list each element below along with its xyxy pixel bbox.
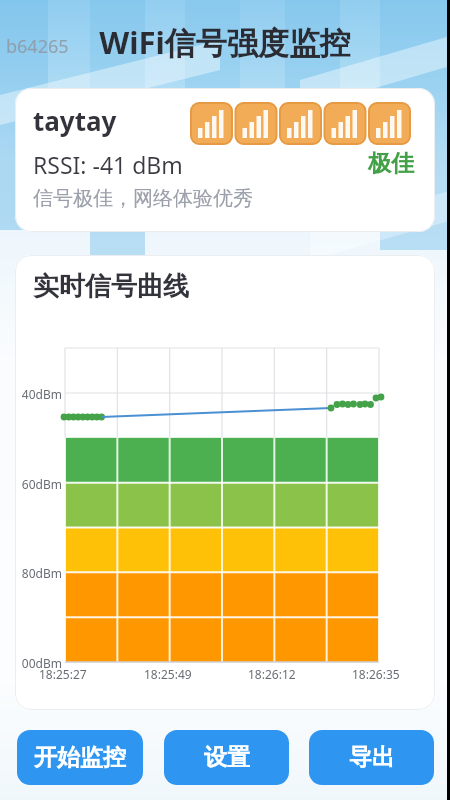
button[interactable]: taytay bbox=[15, 88, 435, 232]
staticText: 极佳 bbox=[15, 149, 414, 181]
staticText: 60dBm bbox=[15, 476, 62, 492]
staticText: 信号极佳，网络体验优秀 bbox=[33, 186, 253, 211]
staticText: b64265 bbox=[6, 34, 69, 59]
staticText: taytay bbox=[33, 103, 117, 138]
staticText: 80dBm bbox=[15, 565, 62, 581]
staticText: 00dBm bbox=[15, 655, 62, 671]
staticText: 18:25:49 bbox=[144, 666, 192, 682]
button[interactable]: 导出 bbox=[309, 730, 434, 785]
staticText: 实时信号曲线 bbox=[33, 270, 189, 303]
staticText: 设置 bbox=[204, 743, 250, 772]
staticText: 18:26:35 bbox=[352, 666, 400, 682]
staticText: 开始监控 bbox=[34, 743, 126, 772]
staticText: 18:25:27 bbox=[39, 666, 87, 682]
staticText: RSSI: -41 dBm bbox=[33, 149, 183, 180]
button[interactable]: 开始监控 bbox=[17, 730, 143, 785]
staticText: 40dBm bbox=[15, 386, 62, 402]
staticText: 18:26:12 bbox=[248, 666, 296, 682]
staticText: 导出 bbox=[349, 743, 395, 772]
staticText: WiFi信号强度监控 bbox=[0, 21, 450, 67]
button[interactable]: 设置 bbox=[164, 730, 289, 785]
